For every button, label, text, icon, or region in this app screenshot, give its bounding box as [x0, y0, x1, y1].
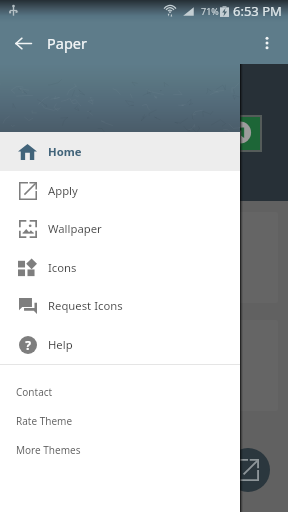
staticText: Icons	[48, 260, 77, 275]
staticText: 71%	[201, 5, 219, 17]
staticText: Home	[48, 144, 82, 159]
staticText: Wallpaper	[48, 221, 102, 236]
button[interactable]: Rate Theme	[0, 406, 240, 435]
button[interactable]: Request Icons	[0, 286, 240, 325]
staticText: Contact	[16, 385, 53, 399]
staticText: Apply	[48, 183, 78, 198]
button[interactable]: More options	[255, 31, 279, 55]
button[interactable]: Contact	[0, 377, 240, 406]
staticText: More Themes	[16, 443, 81, 457]
button[interactable]: Apply	[226, 448, 270, 492]
staticText: Rate Theme	[16, 414, 73, 428]
button[interactable]: Home	[0, 132, 240, 171]
button[interactable]: Icons	[0, 248, 240, 286]
button[interactable]: Wallpaper	[0, 209, 240, 248]
staticText: Paper	[47, 33, 87, 53]
button[interactable]: ?	[0, 325, 240, 363]
staticText: Help	[48, 337, 73, 352]
button[interactable]: Back	[10, 30, 36, 56]
staticText: 6:53 PM	[233, 2, 282, 20]
button[interactable]: More Themes	[0, 435, 240, 464]
button[interactable]: Apply	[0, 171, 240, 209]
staticText: Request Icons	[48, 298, 123, 313]
staticText: ?	[25, 337, 31, 353]
